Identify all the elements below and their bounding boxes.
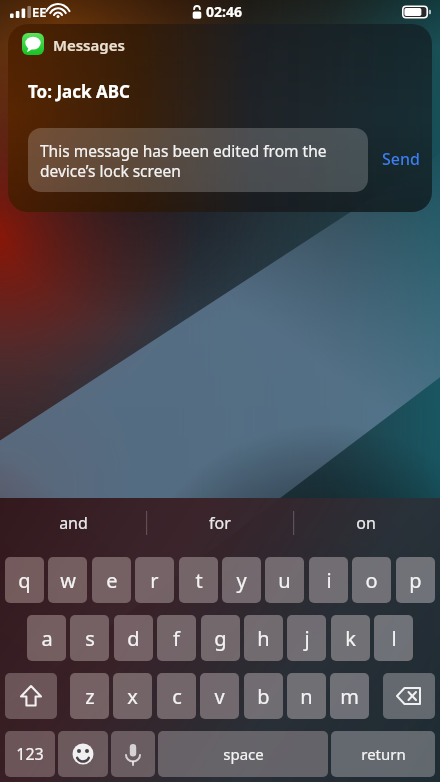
button[interactable]: w	[48, 557, 87, 603]
staticText: h	[257, 625, 270, 652]
staticText: d	[127, 625, 140, 652]
staticText: u	[278, 567, 291, 594]
button[interactable]: v	[200, 673, 239, 719]
staticText: p	[409, 567, 422, 594]
button[interactable]: h	[244, 615, 283, 661]
button[interactable]: t	[179, 557, 218, 603]
staticText: q	[18, 567, 31, 594]
staticText: e	[106, 567, 118, 594]
button[interactable]: space	[158, 731, 328, 777]
button[interactable]: Dictation	[111, 731, 155, 777]
staticText: m	[340, 683, 359, 710]
button[interactable]: u	[265, 557, 304, 603]
staticText: 123	[16, 743, 44, 765]
staticText: space	[223, 744, 264, 764]
button[interactable]: g	[201, 615, 240, 661]
staticText: Messages	[53, 35, 125, 55]
staticText: w	[60, 567, 76, 594]
staticText: t	[195, 567, 203, 594]
staticText: s	[85, 625, 95, 652]
staticText: c	[172, 683, 182, 710]
button[interactable]: f	[157, 615, 196, 661]
staticText: EE	[32, 3, 47, 21]
staticText: o	[365, 567, 378, 594]
staticText: f	[173, 625, 180, 652]
button[interactable]: and	[15, 508, 131, 538]
staticText: n	[300, 683, 313, 710]
button[interactable]: i	[309, 557, 348, 603]
staticText: for	[209, 512, 231, 534]
staticText: y	[236, 567, 247, 594]
staticText: on	[356, 512, 376, 534]
button[interactable]: l	[374, 615, 413, 661]
button[interactable]: y	[222, 557, 261, 603]
button[interactable]: x	[113, 673, 152, 719]
staticText: i	[326, 567, 332, 594]
button[interactable]: s	[70, 615, 109, 661]
button[interactable]: q	[5, 557, 44, 603]
button[interactable]: a	[27, 615, 66, 661]
staticText: This message has been edited from the de…	[40, 140, 358, 181]
staticText: x	[127, 683, 138, 710]
button[interactable]: z	[70, 673, 109, 719]
button[interactable]: 123	[5, 731, 55, 777]
button[interactable]: c	[157, 673, 196, 719]
button[interactable]: Send	[374, 144, 428, 174]
button[interactable]: r	[135, 557, 174, 603]
button[interactable]: n	[287, 673, 326, 719]
staticText: and	[59, 512, 88, 534]
staticText: a	[41, 625, 53, 652]
button[interactable]: return	[331, 731, 435, 777]
button[interactable]: for	[162, 508, 278, 538]
staticText: v	[214, 683, 225, 710]
button[interactable]: p	[396, 557, 435, 603]
staticText: j	[304, 625, 310, 652]
button[interactable]: on	[308, 508, 424, 538]
staticText: r	[150, 567, 159, 594]
button[interactable]: j	[287, 615, 326, 661]
staticText: l	[391, 625, 397, 652]
button[interactable]: d	[114, 615, 153, 661]
staticText: g	[214, 625, 227, 652]
button[interactable]: b	[244, 673, 283, 719]
button[interactable]: This message has been edited from the de…	[28, 128, 368, 192]
staticText: 02:46	[206, 2, 242, 21]
button[interactable]: o	[352, 557, 391, 603]
button[interactable]: Shift	[5, 673, 57, 719]
staticText: Send	[382, 148, 420, 170]
staticText: b	[257, 683, 270, 710]
button[interactable]: m	[330, 673, 369, 719]
button[interactable]: Emoji	[58, 731, 108, 777]
button[interactable]: e	[92, 557, 131, 603]
staticText: k	[345, 625, 356, 652]
button[interactable]: k	[331, 615, 370, 661]
staticText: z	[85, 683, 95, 710]
staticText: To: Jack ABC	[28, 80, 130, 103]
staticText: return	[361, 744, 406, 764]
button[interactable]: Backspace	[383, 673, 435, 719]
button[interactable]: Messages	[8, 24, 432, 212]
